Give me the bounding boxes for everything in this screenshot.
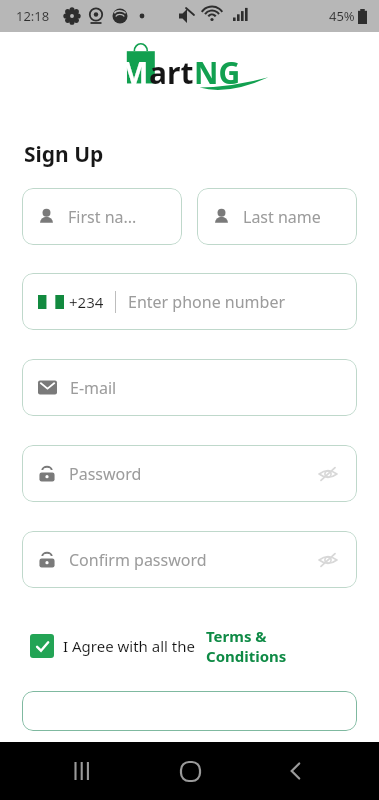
button[interactable]: Back — [272, 747, 320, 795]
staticText: Confirm password — [69, 549, 315, 571]
staticText: 12:18 — [16, 7, 50, 25]
button[interactable]: Terms & Conditions — [206, 626, 287, 666]
button[interactable] — [22, 691, 357, 731]
button[interactable]: First na... — [22, 188, 182, 245]
staticText: Last name — [243, 206, 321, 228]
button[interactable]: Agree to terms — [30, 634, 54, 658]
staticText: +234 — [69, 292, 104, 312]
button[interactable]: E-mail — [22, 359, 357, 416]
button[interactable]: Password — [22, 445, 357, 502]
staticText: Enter phone number — [128, 291, 286, 313]
button[interactable]: Show password — [315, 461, 341, 487]
staticText: M — [120, 52, 149, 93]
button[interactable]: Recent apps — [59, 747, 107, 795]
staticText: NG — [194, 52, 241, 93]
staticText: Password — [69, 463, 315, 485]
button[interactable]: Confirm password — [22, 531, 357, 588]
staticText: Sign Up — [24, 140, 104, 169]
staticText: art — [149, 52, 194, 93]
button[interactable]: Last name — [197, 188, 357, 245]
button[interactable]: +234 — [22, 273, 357, 330]
button[interactable]: Show password — [315, 547, 341, 573]
staticText: E-mail — [70, 377, 117, 399]
staticText: 45% — [329, 7, 355, 25]
button[interactable]: Home — [166, 747, 214, 795]
staticText: First na... — [68, 206, 137, 228]
staticText: I Agree with all the — [63, 636, 195, 656]
